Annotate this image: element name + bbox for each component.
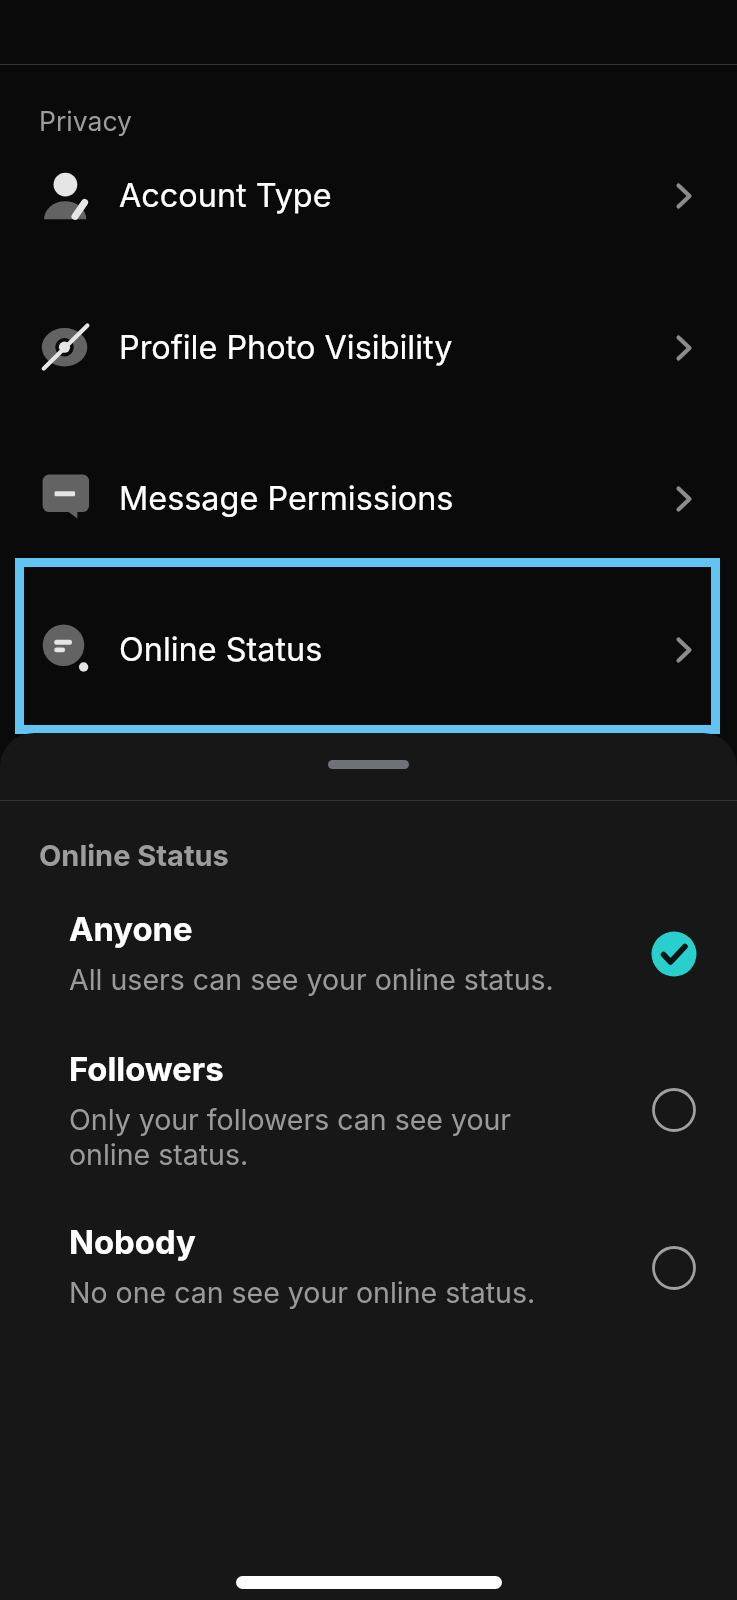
other: Open Profile Photo Visibility [660, 323, 708, 371]
staticText: Followers [69, 1049, 224, 1089]
staticText: All users can see your online status. [69, 962, 554, 997]
other: Open Message Permissions [660, 474, 708, 522]
button[interactable]: Account Type [0, 160, 737, 230]
button[interactable]: Anyone [69, 909, 569, 997]
staticText: Online Status [39, 838, 229, 873]
button[interactable]: Nobody [69, 1222, 569, 1310]
button[interactable]: Profile Photo Visibility [0, 312, 737, 382]
staticText: Nobody [69, 1222, 196, 1262]
button[interactable]: Select Followers [651, 1087, 697, 1133]
staticText: Message Permissions [119, 479, 454, 518]
staticText: Anyone [69, 909, 193, 949]
button[interactable]: Followers [69, 1049, 569, 1172]
staticText: Privacy [39, 105, 132, 137]
staticText: Online Status [119, 630, 323, 669]
button[interactable]: Message Permissions [0, 463, 737, 533]
staticText: Only your followers can see your online … [69, 1102, 569, 1172]
staticText: No one can see your online status. [69, 1275, 536, 1310]
button[interactable]: Online Status [0, 614, 737, 684]
staticText: Profile Photo Visibility [119, 328, 453, 367]
staticText: Account Type [119, 176, 332, 215]
other: Open Account Type [660, 171, 708, 219]
button[interactable]: Select Nobody [651, 1245, 697, 1291]
button[interactable]: Anyone selected [651, 931, 697, 977]
other: Open Online Status [660, 625, 708, 673]
